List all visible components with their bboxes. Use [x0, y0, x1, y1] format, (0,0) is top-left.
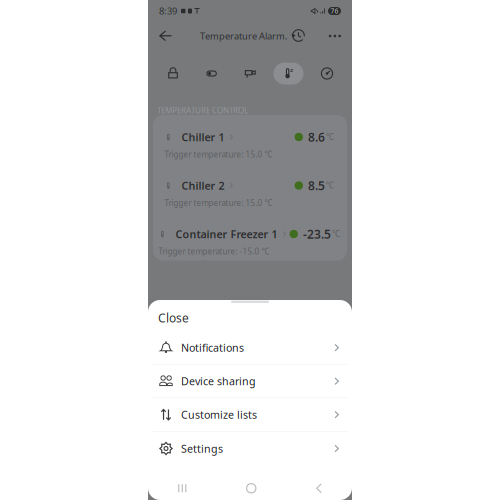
staticText: TEMPERATURE CONTROL — [157, 105, 248, 116]
staticText: Trigger temperature: -15.0 °C — [159, 246, 270, 257]
staticText: 8.5 — [308, 177, 325, 193]
staticText: Device sharing — [181, 374, 256, 388]
staticText: Container Freezer 1 — [176, 227, 278, 241]
staticText: °C — [326, 180, 334, 191]
staticText: -23.5 — [303, 226, 331, 242]
button[interactable]: Temperature — [273, 62, 303, 84]
button[interactable]: Energy meter — [312, 62, 342, 84]
button[interactable]: Lock — [158, 62, 188, 84]
staticText: 76 — [330, 7, 338, 15]
staticText: 8:39 — [159, 5, 177, 17]
staticText: Customize lists — [181, 408, 257, 422]
staticText: Trigger temperature: 15.0 °C — [164, 149, 272, 160]
button[interactable]: Recents — [169, 475, 196, 500]
staticText: Chiller 1 — [181, 130, 224, 144]
button[interactable]: Chiller 1 — [153, 115, 347, 163]
staticText: °C — [332, 229, 340, 239]
button[interactable]: Back — [159, 27, 179, 45]
button[interactable]: Device sharing — [148, 365, 352, 398]
button[interactable]: Power switch — [196, 62, 226, 84]
button[interactable]: Chiller 2 — [153, 163, 347, 212]
button[interactable]: Customize lists — [148, 398, 352, 432]
button[interactable]: Home — [237, 474, 265, 500]
staticText: Close — [158, 310, 189, 326]
button[interactable]: Notifications — [148, 331, 352, 365]
staticText: Settings — [181, 441, 223, 456]
button[interactable]: History — [291, 28, 307, 44]
staticText: Temperature Alarm. — [200, 30, 288, 42]
staticText: 8.6 — [308, 129, 325, 145]
button[interactable]: Close — [148, 307, 352, 329]
staticText: Notifications — [181, 341, 244, 355]
button[interactable]: Camera — [235, 62, 265, 84]
staticText: °C — [326, 132, 334, 142]
button[interactable]: Back — [307, 474, 331, 500]
button[interactable]: Container Freezer 1 — [153, 212, 347, 260]
button[interactable]: More options — [307, 27, 341, 45]
staticText: Chiller 2 — [181, 178, 224, 193]
button[interactable]: Settings — [148, 432, 352, 465]
staticText: Trigger temperature: 15.0 °C — [164, 197, 272, 208]
